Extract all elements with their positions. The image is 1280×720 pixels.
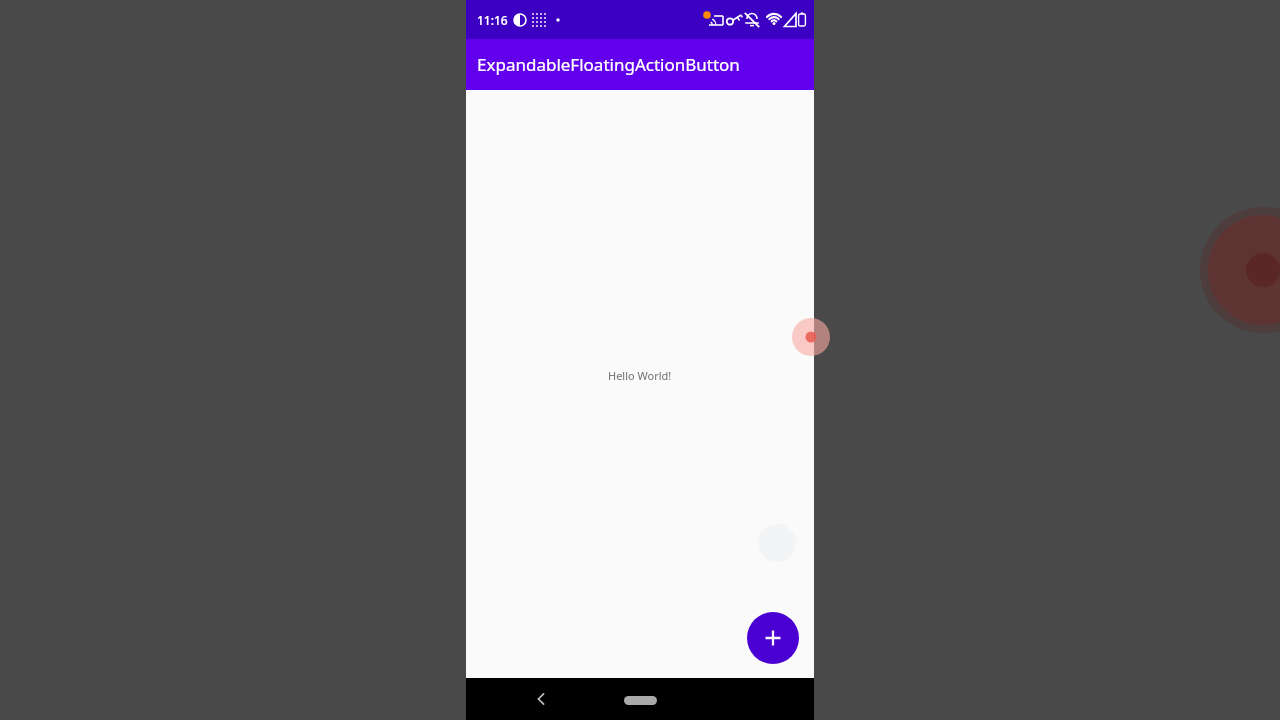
staticText: ExpandableFloatingActionButton — [477, 53, 740, 76]
staticText: Hello World! — [608, 368, 672, 383]
staticText: 11:16 — [477, 12, 508, 28]
button[interactable]: Back — [523, 681, 559, 717]
button[interactable]: Home — [624, 696, 657, 705]
button[interactable]: Add — [747, 612, 799, 664]
